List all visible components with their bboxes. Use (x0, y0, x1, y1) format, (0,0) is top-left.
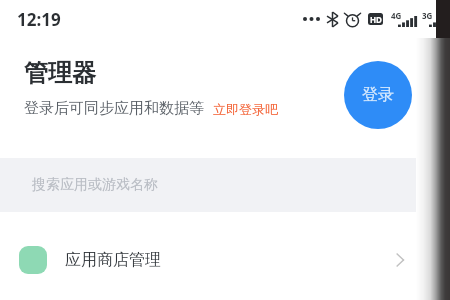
staticText: 12:19 (17, 8, 61, 31)
button[interactable]: 搜索应用或游戏名称 (0, 158, 450, 212)
staticText: 搜索应用或游戏名称 (32, 176, 158, 194)
staticText: 登录 (362, 85, 394, 105)
button[interactable]: 应用商店管理 (0, 236, 450, 284)
staticText: HD (370, 14, 382, 25)
staticText: 应用商店管理 (65, 250, 161, 270)
button[interactable]: Login (344, 61, 412, 129)
staticText: 管理器 (24, 58, 96, 88)
staticText: 4G (391, 10, 402, 21)
staticText: 登录后可同步应用和数据等 (24, 99, 204, 118)
button[interactable]: 立即登录吧 (213, 101, 278, 117)
staticText: 立即登录吧 (213, 101, 278, 117)
staticText: 3G (422, 10, 433, 21)
other: More (392, 252, 408, 268)
